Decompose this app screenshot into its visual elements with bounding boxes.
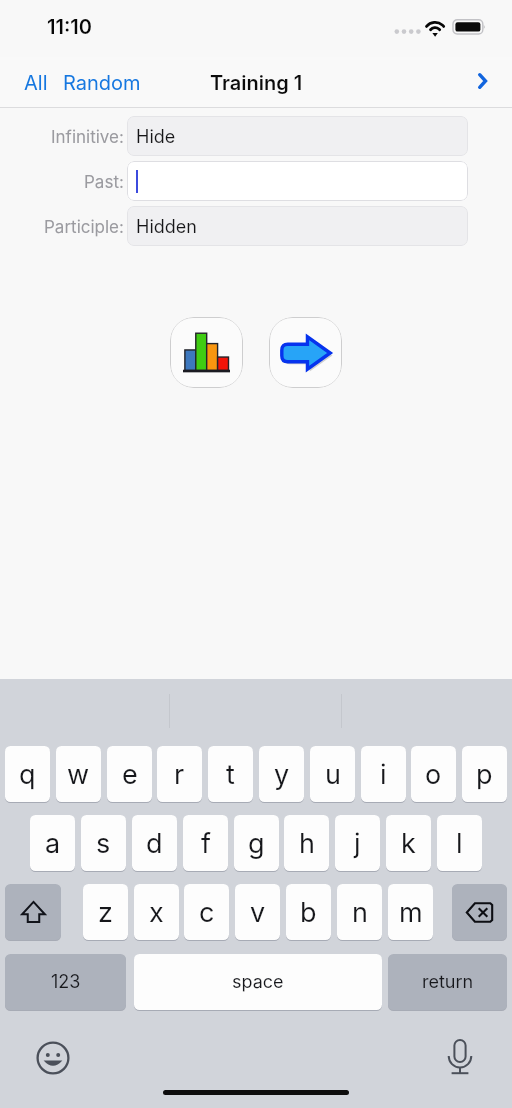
staticText: d (146, 827, 163, 860)
button[interactable]: t (208, 746, 253, 802)
staticText: Past: (84, 172, 124, 193)
staticText: g (248, 827, 265, 860)
button[interactable]: s (81, 815, 126, 871)
staticText: m (399, 896, 423, 929)
button[interactable]: u (310, 746, 355, 802)
staticText: e (122, 758, 138, 791)
button[interactable]: o (411, 746, 456, 802)
button[interactable]: a (30, 815, 75, 871)
button[interactable]: k (386, 815, 431, 871)
staticText: l (456, 827, 463, 860)
staticText: x (149, 896, 164, 929)
staticText: q (19, 758, 36, 791)
button[interactable]: y (259, 746, 304, 802)
staticText: w (67, 758, 90, 791)
staticText: space (232, 971, 284, 993)
staticText: a (45, 827, 61, 860)
staticText: n (352, 896, 368, 929)
button[interactable] (127, 161, 468, 201)
staticText: o (425, 758, 442, 791)
button[interactable]: d (132, 815, 177, 871)
staticText: s (96, 827, 111, 860)
staticText: Participle: (44, 217, 124, 238)
staticText: r (174, 758, 185, 791)
button[interactable]: n (337, 884, 382, 940)
button[interactable]: h (284, 815, 329, 871)
button[interactable]: l (437, 815, 482, 871)
staticText: return (422, 971, 474, 993)
button[interactable]: z (83, 884, 128, 940)
button[interactable]: w (56, 746, 101, 802)
button[interactable]: m (388, 884, 433, 940)
button[interactable]: r (157, 746, 202, 802)
staticText: j (354, 827, 361, 860)
button[interactable]: g (234, 815, 279, 871)
button[interactable]: Dictation (440, 1037, 480, 1077)
staticText: Hidden (136, 216, 197, 238)
staticText: u (325, 758, 341, 791)
button[interactable]: f (183, 815, 228, 871)
staticText: i (380, 758, 387, 791)
button[interactable]: return (388, 954, 507, 1010)
button[interactable]: Next word (269, 317, 342, 388)
button[interactable]: 123 (5, 954, 126, 1010)
button[interactable]: All (18, 64, 54, 102)
staticText: All (24, 71, 48, 95)
button[interactable]: x (134, 884, 179, 940)
staticText: t (226, 758, 235, 791)
button[interactable]: Backspace (452, 884, 507, 940)
button[interactable]: Shift (5, 884, 61, 940)
button[interactable]: j (335, 815, 380, 871)
staticText: y (274, 758, 290, 791)
staticText: 123 (51, 971, 81, 993)
button[interactable]: i (361, 746, 406, 802)
button[interactable]: Statistics (170, 317, 243, 388)
button[interactable]: space (134, 954, 382, 1010)
staticText: Infinitive: (51, 127, 124, 148)
button[interactable]: Emoji (33, 1038, 73, 1078)
button[interactable]: q (5, 746, 50, 802)
staticText: Training 1 (210, 71, 303, 95)
staticText: c (199, 896, 215, 929)
staticText: z (98, 896, 113, 929)
button[interactable]: e (107, 746, 152, 802)
staticText: 11:10 (47, 15, 92, 39)
button[interactable]: Hide (127, 116, 468, 156)
staticText: Random (63, 71, 141, 95)
button[interactable]: Next (462, 61, 502, 101)
staticText: v (250, 896, 266, 929)
button[interactable]: Random (57, 64, 147, 102)
staticText: Hide (136, 126, 176, 148)
staticText: h (299, 827, 315, 860)
button[interactable]: c (184, 884, 229, 940)
button[interactable]: Hidden (127, 206, 468, 246)
button[interactable]: b (286, 884, 331, 940)
staticText: b (300, 896, 317, 929)
button[interactable]: v (235, 884, 280, 940)
button[interactable]: p (462, 746, 507, 802)
staticText: k (401, 827, 416, 860)
staticText: p (476, 758, 493, 791)
staticText: f (201, 827, 211, 860)
